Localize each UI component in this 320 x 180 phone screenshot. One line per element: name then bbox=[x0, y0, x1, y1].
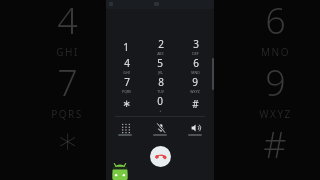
staticText: 7 bbox=[124, 75, 130, 89]
staticText: 7 bbox=[57, 58, 78, 107]
staticText: PQRS bbox=[122, 89, 131, 94]
button[interactable]: Mute microphone bbox=[144, 122, 176, 136]
staticText: 4 bbox=[124, 56, 130, 70]
staticText: 4 bbox=[57, 0, 78, 45]
button[interactable]: 8 bbox=[145, 75, 175, 94]
staticText: 1 bbox=[123, 40, 129, 54]
button[interactable]: 2 bbox=[145, 37, 175, 56]
button[interactable]: 5 bbox=[145, 56, 175, 75]
staticText: 8 bbox=[158, 75, 164, 89]
button[interactable]: Keypad bbox=[109, 122, 141, 136]
staticText: 5 bbox=[157, 56, 163, 70]
button[interactable]: 6 bbox=[180, 56, 210, 75]
staticText: # bbox=[263, 120, 287, 169]
staticText: DEF bbox=[192, 51, 199, 56]
staticText: WXYZ bbox=[190, 89, 200, 94]
staticText: MNO bbox=[191, 70, 200, 75]
staticText: # bbox=[192, 97, 199, 111]
staticText: + bbox=[159, 108, 162, 113]
staticText: ∗ bbox=[122, 98, 131, 110]
button[interactable]: 3 bbox=[180, 37, 210, 56]
staticText: PQRS bbox=[51, 107, 83, 121]
button[interactable]: ∗ bbox=[111, 94, 141, 113]
button[interactable]: Speaker bbox=[179, 122, 211, 136]
button[interactable]: 1 bbox=[111, 37, 141, 56]
button[interactable]: # bbox=[180, 94, 210, 113]
button[interactable]: End call bbox=[150, 146, 171, 167]
button[interactable]: 4 bbox=[111, 56, 141, 75]
staticText: 9 bbox=[265, 58, 286, 107]
staticText: WXYZ bbox=[259, 107, 292, 121]
staticText: ∗ bbox=[56, 120, 79, 162]
staticText: 0 bbox=[157, 94, 163, 108]
staticText: 6 bbox=[193, 56, 199, 70]
staticText: GHI bbox=[123, 70, 130, 75]
staticText: TUV bbox=[157, 89, 164, 94]
staticText: 6 bbox=[265, 0, 286, 45]
button[interactable]: 7 bbox=[111, 75, 141, 94]
staticText: MNO bbox=[261, 45, 290, 59]
staticText: 9 bbox=[192, 75, 198, 89]
staticText: 2 bbox=[158, 37, 164, 51]
staticText: GHI bbox=[56, 45, 79, 59]
staticText: ABC bbox=[157, 51, 164, 56]
button[interactable]: 0 bbox=[145, 94, 175, 113]
button[interactable]: 9 bbox=[180, 75, 210, 94]
staticText: JKL bbox=[158, 70, 163, 75]
staticText: 3 bbox=[193, 37, 199, 51]
